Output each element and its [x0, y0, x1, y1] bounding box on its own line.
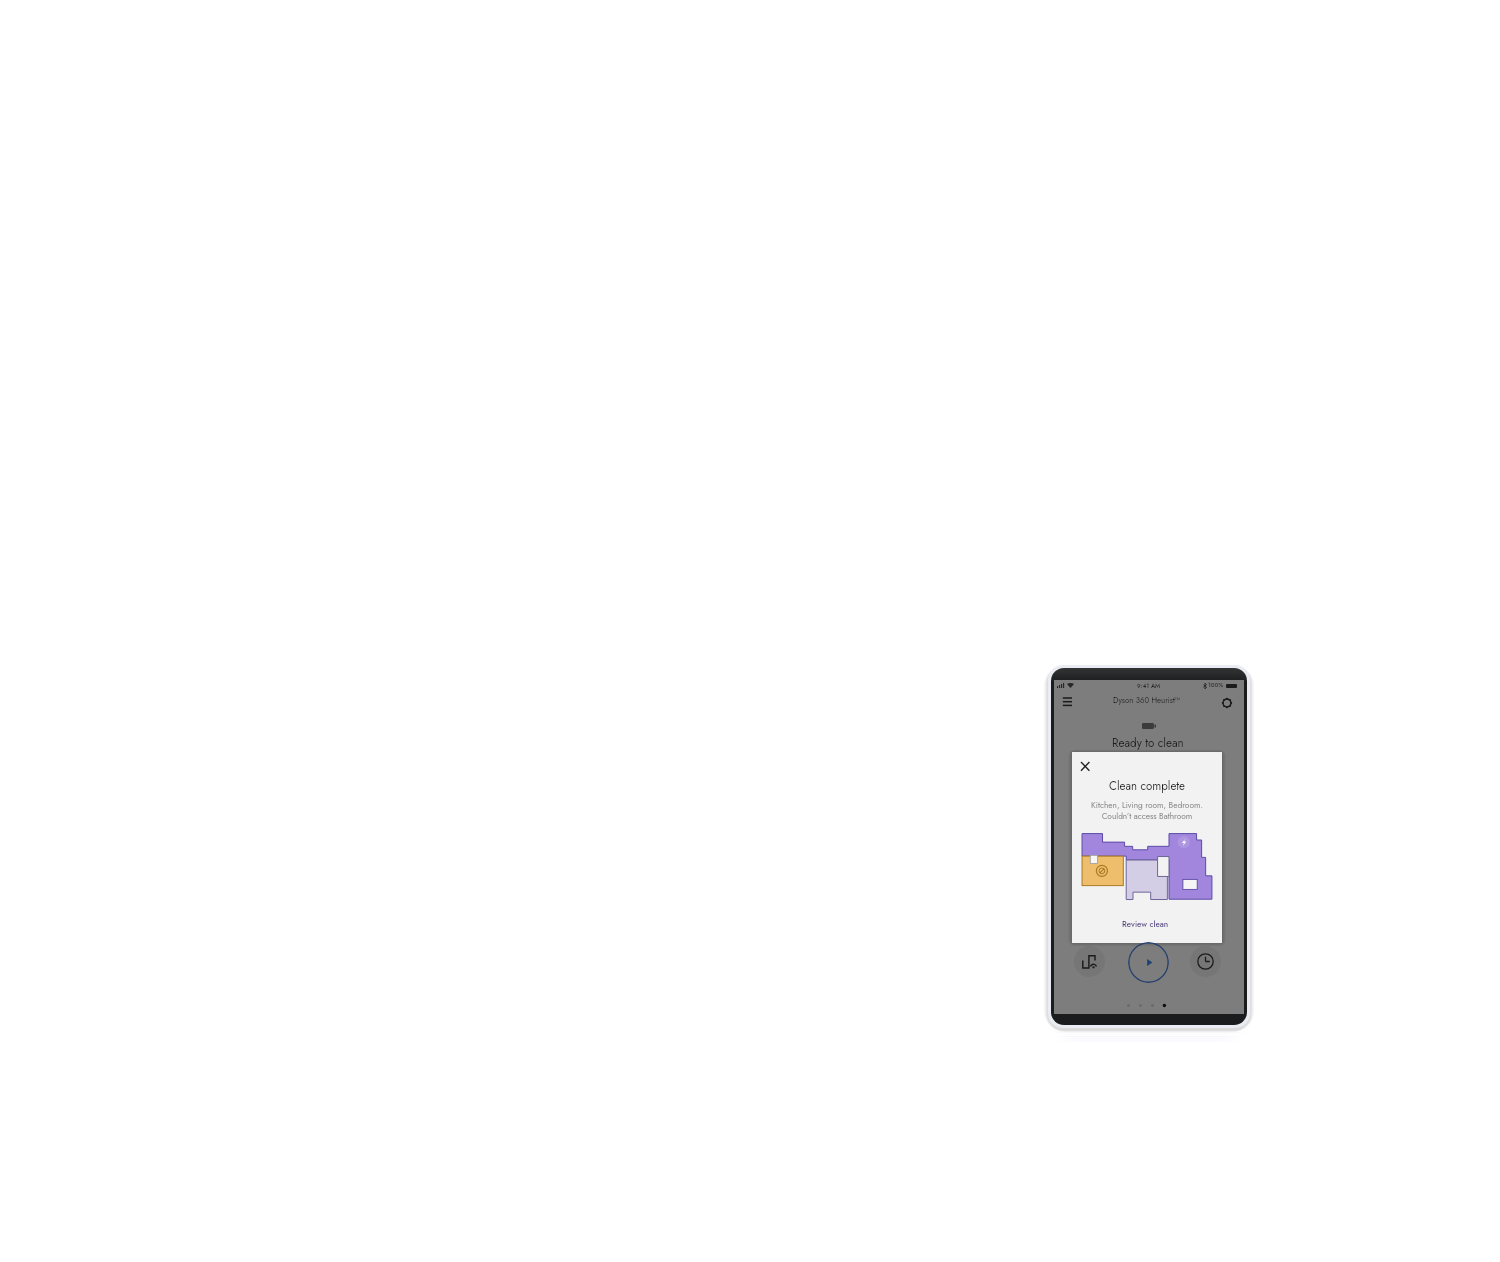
button[interactable]: Settings [1220, 696, 1234, 710]
staticText: Clean complete [1109, 778, 1186, 795]
staticText: 9:41 AM [1137, 682, 1161, 691]
button[interactable]: Close [1079, 760, 1092, 773]
staticText: Dyson 360 Heurist™ [1113, 695, 1181, 706]
button[interactable]: Schedule [1190, 946, 1221, 977]
staticText: Kitchen, Living room, Bedroom. Couldn’t … [1091, 799, 1203, 822]
staticText: 100% [1208, 681, 1224, 690]
button[interactable]: Menu [1061, 693, 1074, 705]
button[interactable]: Review clean [1108, 914, 1183, 934]
staticText: Review clean [1122, 918, 1169, 930]
button[interactable]: Zones [1074, 946, 1105, 977]
button[interactable]: Start clean [1128, 942, 1169, 983]
staticText: Ready to clean [1112, 735, 1184, 752]
